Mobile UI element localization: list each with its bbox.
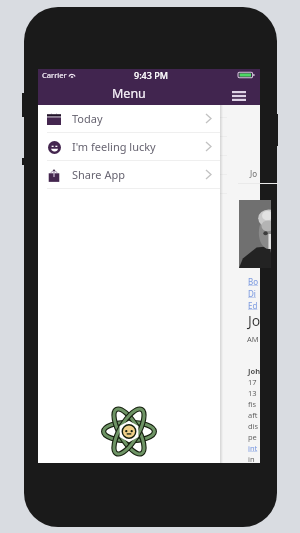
staticText: Ed [248, 300, 258, 311]
button[interactable]: Today [38, 105, 220, 132]
staticText: aft [248, 410, 258, 420]
staticText: dis [248, 421, 259, 431]
button[interactable]: Open navigation menu [228, 86, 250, 105]
button[interactable]: Share App [38, 161, 220, 188]
staticText: 13 [248, 388, 257, 398]
staticText: Joh [248, 366, 261, 376]
staticText: Share App [72, 167, 125, 182]
staticText: int [248, 443, 258, 453]
staticText: Today [72, 111, 103, 126]
staticText: in [248, 454, 255, 464]
staticText: 17 [248, 377, 257, 387]
staticText: 9:43 PM [134, 69, 168, 81]
staticText: Menu [112, 85, 146, 102]
staticText: Bo [248, 276, 259, 287]
staticText: fis [248, 399, 257, 409]
button[interactable]: I'm feeling lucky [38, 133, 220, 160]
staticText: Jo [250, 168, 258, 179]
staticText: Di [248, 288, 256, 299]
staticText: I'm feeling lucky [72, 139, 156, 154]
staticText: Carrier [42, 70, 67, 80]
staticText: pe [248, 432, 257, 442]
staticText: AM [247, 334, 259, 344]
staticText: Jo [248, 311, 261, 330]
